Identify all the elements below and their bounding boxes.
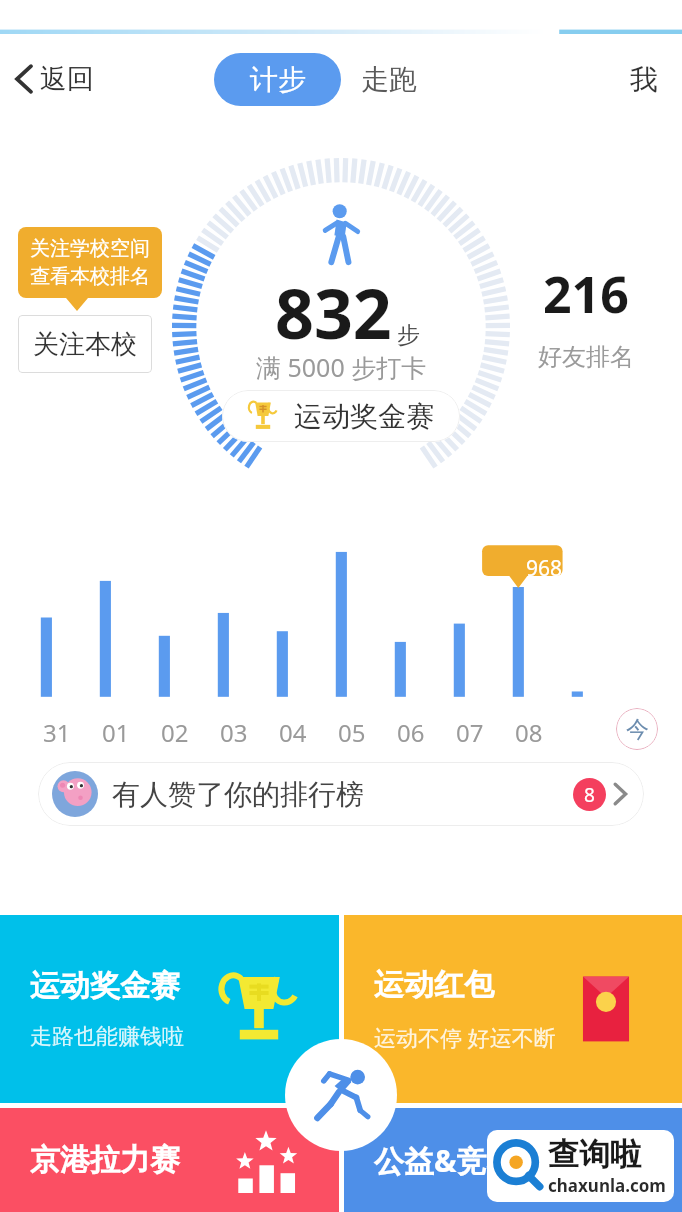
button[interactable]: 运动奖金赛 [0,915,339,1103]
staticText: 我 [630,62,658,97]
staticText: 运动红包 [374,966,494,1004]
staticText: 关注学校空间 [30,236,150,261]
staticText: 8 [584,782,595,808]
staticText: 832 [275,266,392,359]
staticText: 步 [397,321,420,350]
button[interactable]: 返回 [0,52,108,106]
staticText: 运动奖金赛 [30,967,180,1005]
button[interactable]: 走跑 [341,50,437,109]
staticText: 216 [543,260,629,328]
button[interactable]: 216 [530,252,642,380]
staticText: 查询啦 [548,1135,641,1174]
staticText: 运动不停 好运不断 [374,1022,556,1052]
button[interactable]: 开始跑步 [285,1039,397,1151]
button[interactable]: 今 [616,708,658,750]
staticText: 今 [626,715,649,744]
button[interactable]: 运动奖金赛 [222,390,460,442]
staticText: 04 [279,716,307,749]
staticText: 查看本校排名 [30,264,150,289]
staticText: 31 [43,716,71,749]
staticText: 9681步 [526,554,596,583]
staticText: 计步 [250,62,306,97]
staticText: 有人赞了你的排行榜 [112,777,364,812]
staticText: 满 5000 步打卡 [256,350,427,384]
staticText: 06 [397,716,425,749]
button[interactable]: 运动红包 [344,915,682,1103]
staticText: 走路也能赚钱啦 [30,1023,184,1051]
staticText: 08 [515,716,543,749]
button[interactable]: 公益&竞赛 [344,1108,682,1212]
button[interactable]: 关注学校空间 [18,227,162,298]
button[interactable]: 有人赞了你的排行榜 [38,762,644,826]
button[interactable]: 京港拉力赛 [0,1108,339,1212]
staticText: 05 [338,716,366,749]
staticText: 02 [161,716,189,749]
button[interactable]: 我 [606,50,682,109]
button[interactable]: 计步 [214,53,341,106]
staticText: chaxunla.com [548,1174,666,1197]
staticText: 公益&竞赛 [374,1140,517,1181]
staticText: 01 [102,716,130,749]
staticText: 03 [220,716,248,749]
staticText: 关注本校 [33,328,137,361]
staticText: 07 [456,716,484,749]
staticText: 好友排名 [538,342,634,372]
staticText: 运动奖金赛 [294,399,434,434]
staticText: 京港拉力赛 [30,1141,180,1179]
staticText: 走跑 [361,62,417,97]
staticText: 返回 [40,62,94,96]
button[interactable]: 关注本校 [18,315,152,373]
